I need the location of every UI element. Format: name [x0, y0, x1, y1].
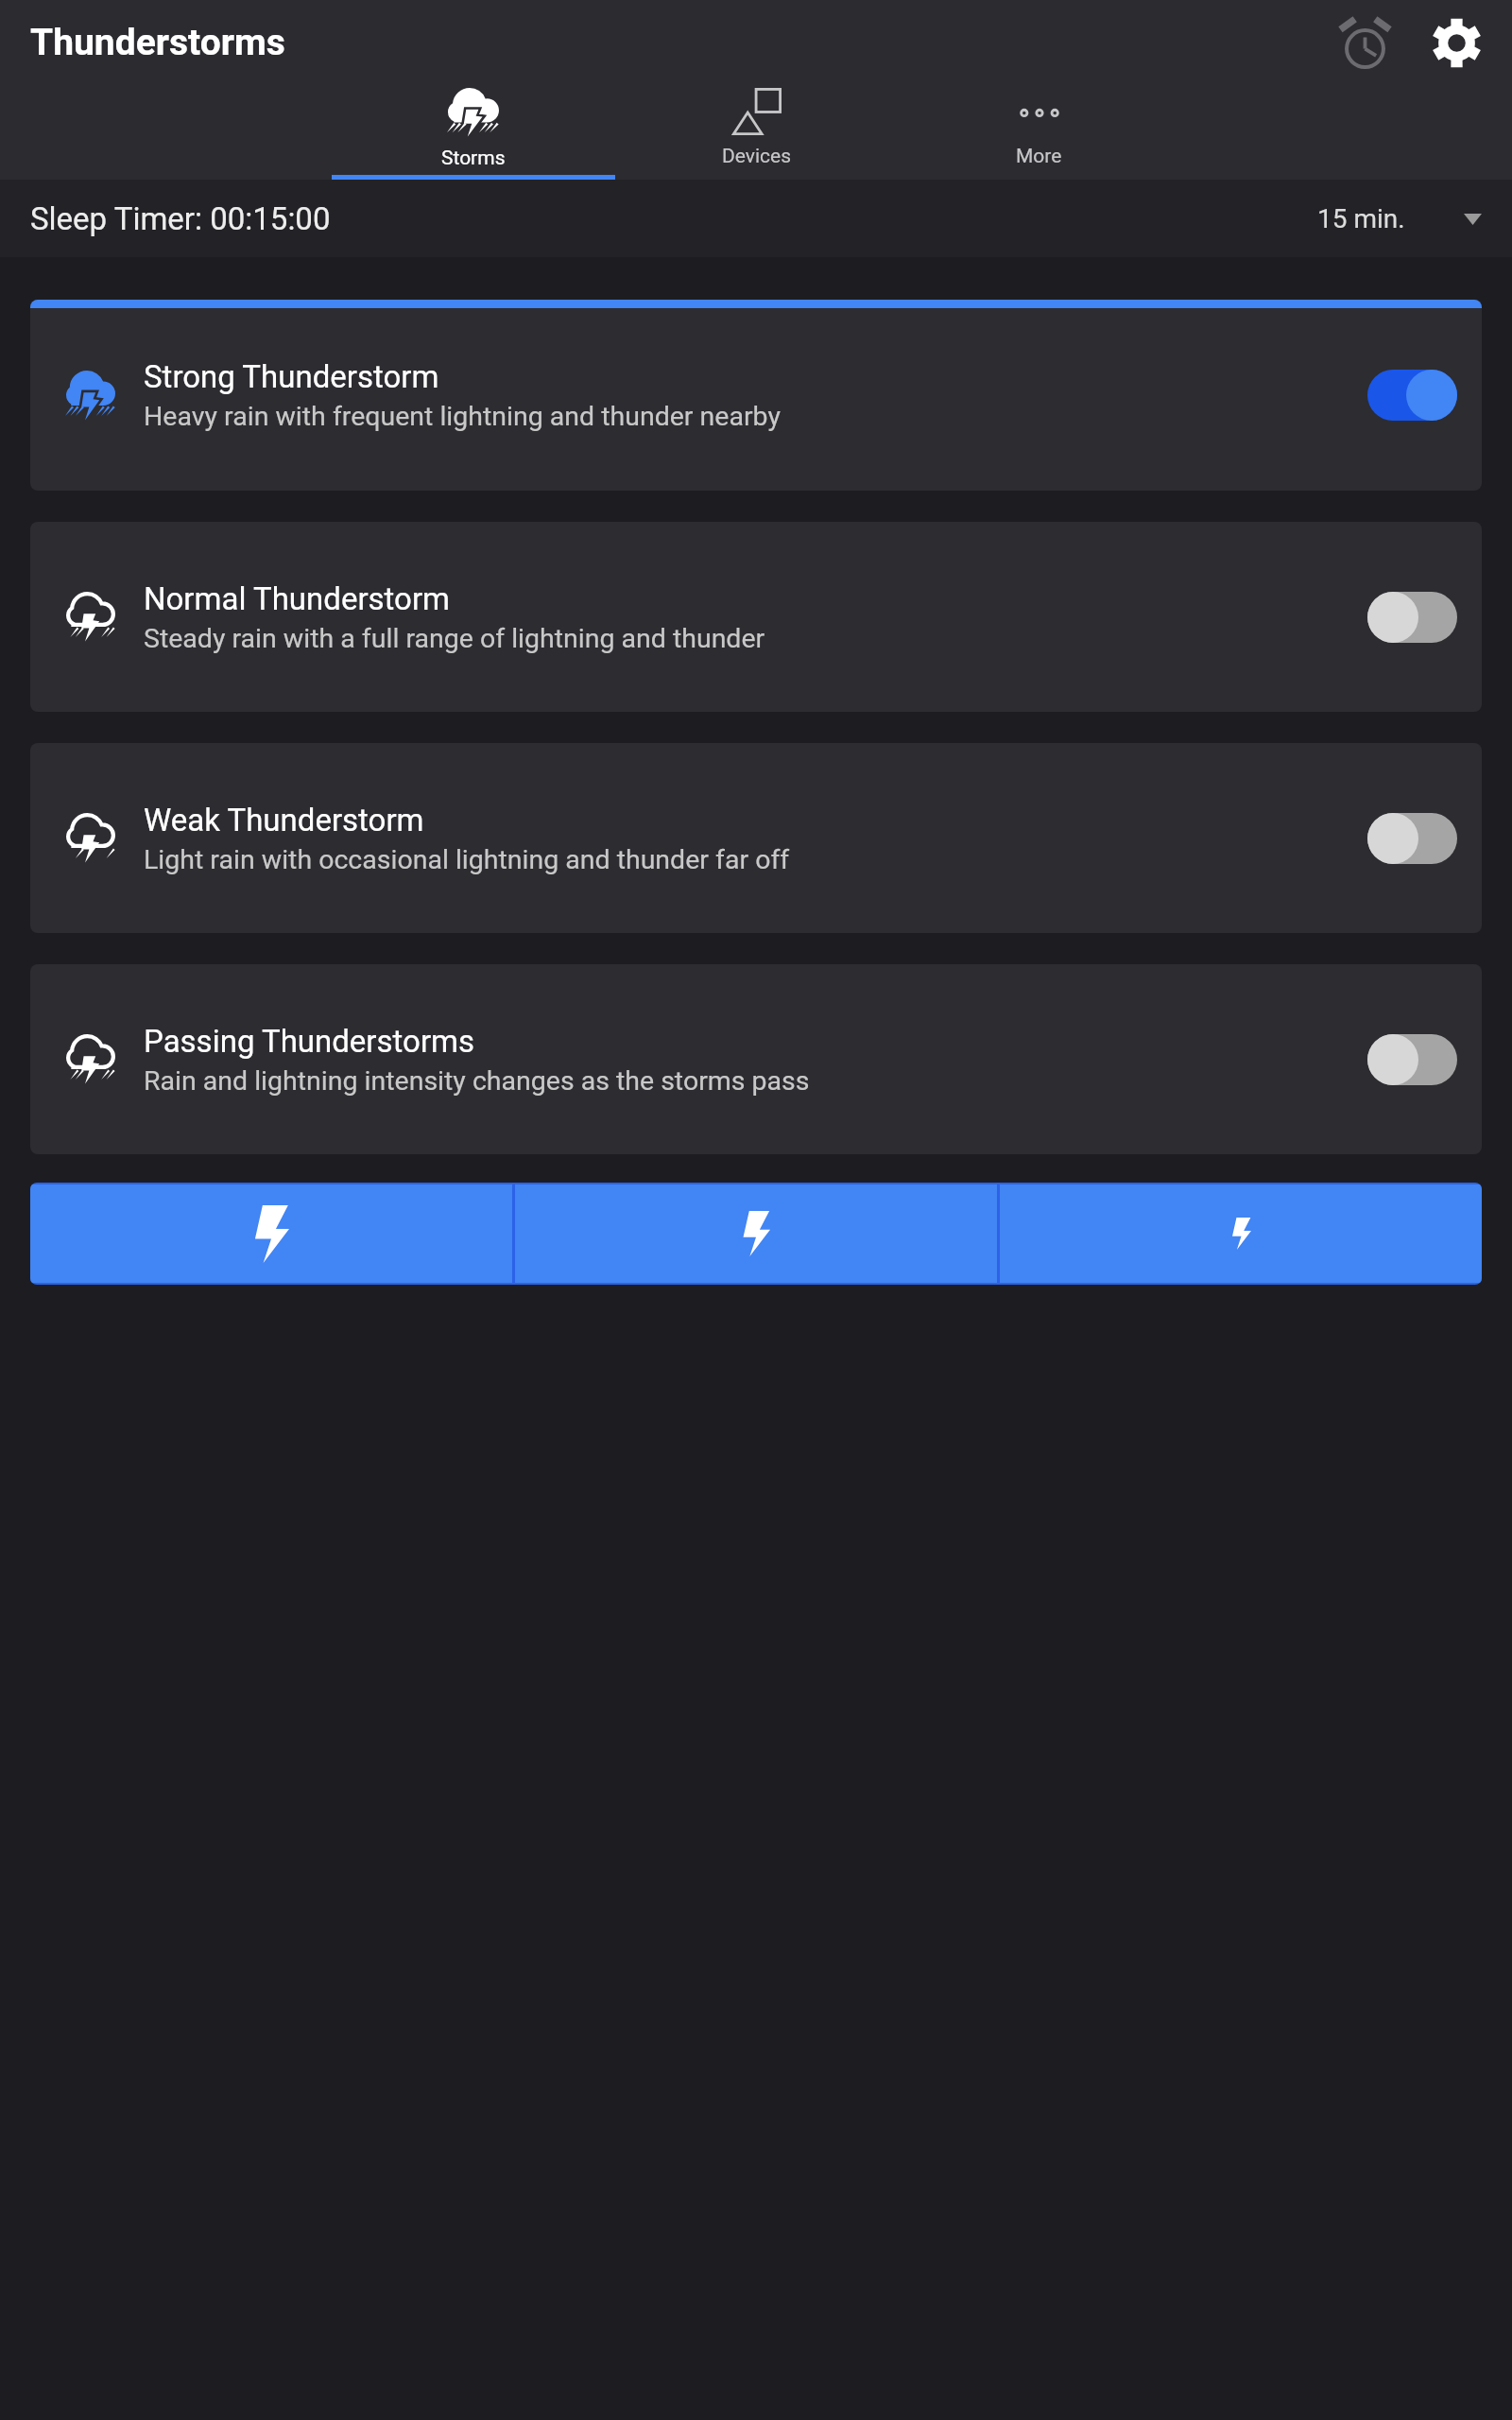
button[interactable]: Passing Thunderstorms: [30, 964, 1482, 1154]
staticText: Heavy rain with frequent lightning and t…: [144, 401, 781, 432]
button[interactable]: Play thunder: [30, 1184, 512, 1283]
staticText: Thunderstorms: [30, 21, 285, 64]
staticText: Light rain with occasional lightning and…: [144, 844, 790, 875]
staticText: More: [1016, 145, 1062, 168]
button[interactable]: Weak Thunderstorm: [30, 743, 1482, 933]
button[interactable]: Disabled: [1367, 592, 1457, 643]
button[interactable]: Storms: [332, 85, 615, 180]
staticText: Rain and lightning intensity changes as …: [144, 1065, 810, 1097]
button[interactable]: Normal Thunderstorm: [30, 522, 1482, 712]
staticText: 15 min.: [1317, 203, 1405, 234]
staticText: Strong Thunderstorm: [144, 358, 439, 395]
button[interactable]: Devices: [615, 85, 898, 180]
button[interactable]: Sleep Timer: 00:15:00: [0, 180, 1512, 257]
button[interactable]: Disabled: [1367, 1034, 1457, 1085]
button[interactable]: Strong Thunderstorm: [30, 300, 1482, 491]
staticText: Passing Thunderstorms: [144, 1023, 475, 1060]
button[interactable]: Disabled: [1367, 813, 1457, 864]
staticText: Storms: [441, 147, 506, 170]
button[interactable]: Play thunder: [515, 1184, 997, 1283]
staticText: Sleep Timer: 00:15:00: [30, 200, 331, 237]
staticText: Steady rain with a full range of lightni…: [144, 623, 765, 654]
button[interactable]: Settings: [1411, 0, 1503, 85]
button[interactable]: More: [898, 85, 1180, 180]
staticText: Devices: [722, 145, 792, 168]
button[interactable]: Play thunder: [1000, 1184, 1482, 1283]
button[interactable]: Sleep timer: [1319, 0, 1411, 85]
button[interactable]: Enabled: [1367, 370, 1457, 421]
staticText: Weak Thunderstorm: [144, 802, 424, 838]
staticText: Normal Thunderstorm: [144, 580, 451, 617]
